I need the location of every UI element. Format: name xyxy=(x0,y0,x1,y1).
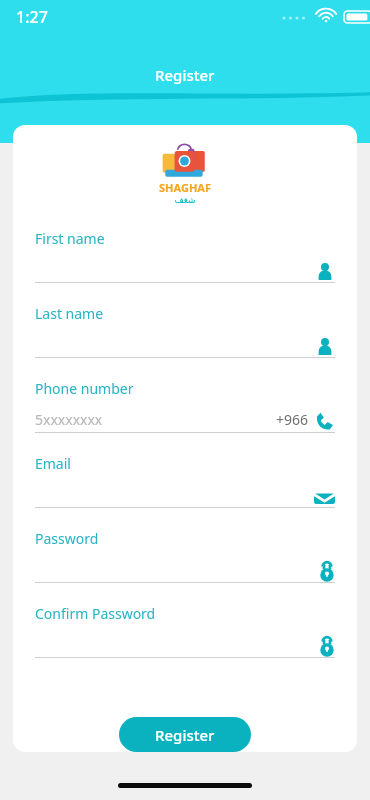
staticText: Last name xyxy=(35,304,104,323)
staticText: SHAGHAF xyxy=(159,180,211,195)
button[interactable]: Register xyxy=(119,717,251,752)
button[interactable]: Password xyxy=(23,529,347,604)
staticText: شغف xyxy=(174,195,196,205)
staticText: Confirm Password xyxy=(35,604,156,623)
staticText: 5xxxxxxxx xyxy=(35,410,103,429)
other: Name xyxy=(315,336,335,356)
staticText: Register xyxy=(155,725,215,745)
staticText: Email xyxy=(35,454,71,473)
button[interactable]: Phone number xyxy=(23,379,347,454)
other: Name xyxy=(315,261,335,281)
staticText: Register xyxy=(155,65,215,85)
other: Phone xyxy=(315,411,335,431)
other: Email xyxy=(314,490,335,506)
button[interactable]: Email xyxy=(23,454,347,529)
other: Password xyxy=(319,561,335,581)
staticText: First name xyxy=(35,229,105,248)
staticText: Phone number xyxy=(35,379,134,398)
staticText: Password xyxy=(35,529,99,548)
button[interactable]: Last name xyxy=(23,304,347,379)
button[interactable]: Confirm Password xyxy=(23,604,347,679)
staticText: 1:27 xyxy=(16,6,48,28)
staticText: +966 xyxy=(276,410,309,429)
other: Password xyxy=(319,636,335,656)
button[interactable]: First name xyxy=(23,229,347,304)
